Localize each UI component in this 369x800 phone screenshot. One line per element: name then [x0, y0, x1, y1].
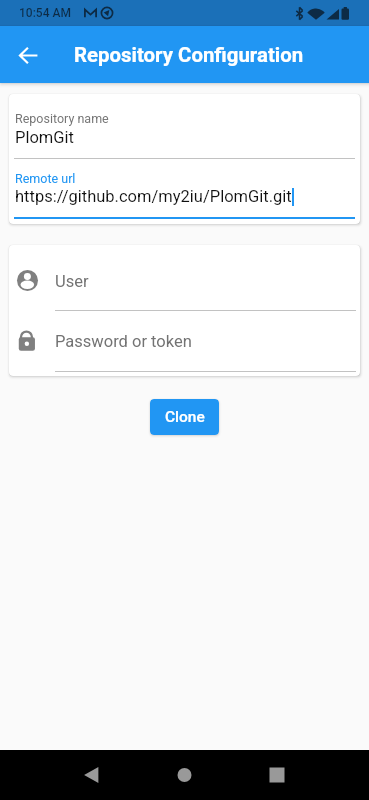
button[interactable]: Clone: [150, 399, 219, 435]
button[interactable]: Back: [10, 37, 46, 73]
staticText: User: [55, 272, 89, 291]
staticText: Password or token: [55, 332, 192, 351]
staticText: PlomGit: [15, 128, 74, 147]
button[interactable]: User: [9, 245, 360, 316]
staticText: 10:54 AM: [19, 6, 71, 20]
staticText: https://github.com/my2iu/PlomGit.git: [15, 187, 292, 206]
staticText: Repository name: [15, 111, 109, 126]
button[interactable]: Password or token: [9, 245, 360, 376]
button[interactable]: Recent apps: [262, 750, 292, 800]
staticText: Remote url: [15, 171, 76, 186]
staticText: Repository Configuration: [74, 43, 304, 67]
button[interactable]: Home: [170, 750, 200, 800]
staticText: Clone: [165, 408, 205, 426]
button[interactable]: Back: [69, 750, 99, 800]
